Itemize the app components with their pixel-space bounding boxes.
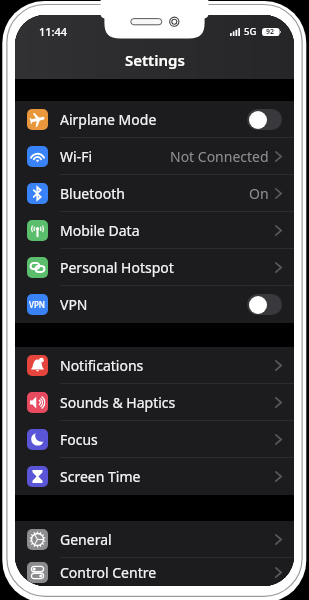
button[interactable]: Bluetooth (15, 175, 294, 212)
staticText: On (249, 184, 269, 203)
staticText: Control Centre (60, 563, 157, 582)
staticText: Settings (125, 50, 185, 70)
button[interactable]: VPN (15, 286, 294, 323)
staticText: VPN (29, 299, 46, 310)
button[interactable]: Notifications (15, 347, 294, 384)
button[interactable]: Wi-Fi (15, 138, 294, 175)
button[interactable]: Screen Time (15, 458, 294, 495)
button[interactable]: General (15, 521, 294, 558)
staticText: Wi-Fi (60, 147, 93, 166)
staticText: Bluetooth (60, 184, 125, 203)
staticText: Not Connected (170, 147, 269, 166)
button[interactable]: Mobile Data (15, 212, 294, 249)
staticText: General (60, 530, 112, 549)
button[interactable]: Personal Hotspot (15, 249, 294, 286)
staticText: 11:44 (39, 24, 68, 39)
button[interactable]: Airplane Mode (15, 101, 294, 138)
staticText: Personal Hotspot (60, 258, 174, 277)
staticText: 5G (244, 25, 257, 38)
staticText: Screen Time (60, 467, 141, 486)
staticText: 92 (266, 27, 275, 37)
staticText: Sounds & Haptics (60, 393, 176, 412)
staticText: Focus (60, 430, 98, 449)
staticText: Airplane Mode (60, 110, 157, 129)
button[interactable]: Sounds & Haptics (15, 384, 294, 421)
button[interactable]: Control Centre (15, 558, 294, 586)
staticText: VPN (60, 295, 88, 314)
staticText: Notifications (60, 356, 144, 375)
staticText: Mobile Data (60, 221, 140, 240)
button[interactable]: Focus (15, 421, 294, 458)
